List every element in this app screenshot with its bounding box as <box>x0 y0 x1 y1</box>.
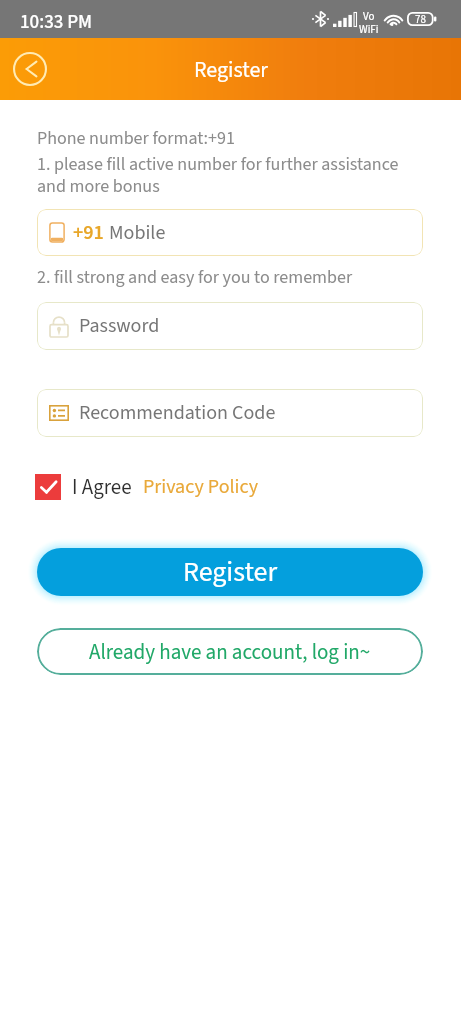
staticText: Register <box>183 552 278 592</box>
staticText: Privacy Policy <box>143 473 259 501</box>
staticText: Password <box>79 312 160 340</box>
button[interactable]: Register <box>37 548 423 596</box>
staticText: 1. please fill active number for further… <box>37 152 399 178</box>
button[interactable]: Already have an account, log in~ <box>37 628 423 675</box>
button[interactable]: +91 <box>37 209 423 256</box>
staticText: 10:33 PM <box>20 9 93 36</box>
staticText: +91 <box>73 219 104 247</box>
staticText: I Agree <box>72 472 132 502</box>
staticText: Recommendation Code <box>79 399 276 427</box>
button[interactable]: Privacy Policy <box>143 473 259 501</box>
staticText: 78 <box>415 12 426 28</box>
button[interactable]: I Agree <box>35 474 61 500</box>
staticText: WiFi <box>359 22 379 38</box>
staticText: Vo <box>363 9 375 25</box>
button[interactable]: Recommendation Code <box>37 389 423 437</box>
staticText: Phone number format:+91 <box>37 126 235 152</box>
staticText: Mobile <box>109 219 166 247</box>
button[interactable]: Back <box>9 48 51 90</box>
button[interactable]: Password <box>37 302 423 350</box>
staticText: Already have an account, log in~ <box>89 637 371 667</box>
staticText: and more bonus <box>37 174 160 200</box>
staticText: 2. fill strong and easy for you to remem… <box>37 265 353 291</box>
staticText: Register <box>194 54 268 85</box>
